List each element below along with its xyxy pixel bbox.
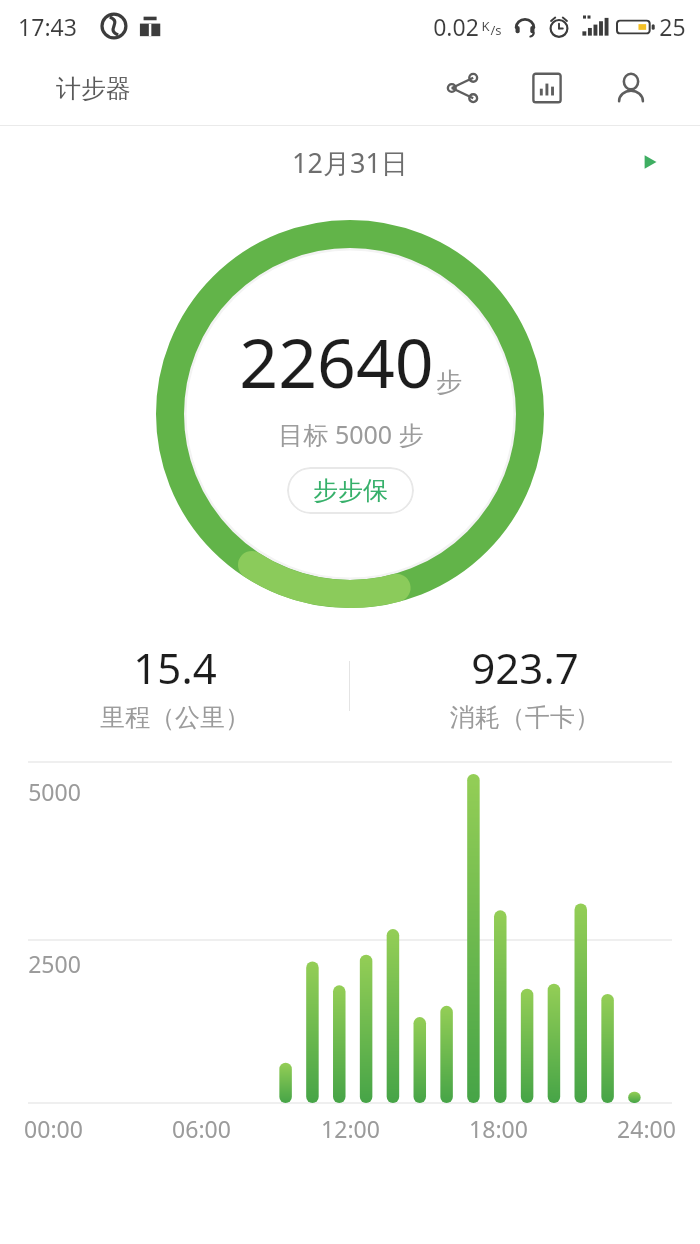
staticText: 里程（公里） bbox=[100, 702, 250, 733]
staticText: 消耗（千卡） bbox=[450, 702, 600, 733]
staticText: 步 bbox=[436, 366, 462, 399]
staticText: 00:00 bbox=[24, 1113, 83, 1144]
staticText: 25 bbox=[659, 11, 686, 42]
staticText: 目标 5000 步 bbox=[278, 417, 424, 451]
staticText: 06:00 bbox=[172, 1113, 231, 1144]
staticText: 22640 bbox=[239, 315, 434, 408]
staticText: 15.4 bbox=[133, 639, 217, 696]
staticText: /s bbox=[490, 21, 502, 39]
button[interactable]: Share bbox=[434, 59, 492, 117]
button[interactable]: Next day bbox=[632, 144, 668, 180]
staticText: 12:00 bbox=[321, 1113, 380, 1144]
staticText: 12月31日 bbox=[292, 144, 408, 181]
button[interactable]: 15.4 bbox=[0, 639, 349, 733]
staticText: 计步器 bbox=[56, 73, 131, 104]
button[interactable]: Profile bbox=[602, 59, 660, 117]
staticText: 24:00 bbox=[617, 1113, 676, 1144]
staticText: 17:43 bbox=[18, 11, 77, 42]
button[interactable]: 步步保 bbox=[287, 467, 414, 514]
staticText: 0.02 bbox=[433, 11, 479, 42]
staticText: 2500 bbox=[28, 948, 81, 979]
staticText: K bbox=[481, 17, 490, 35]
staticText: 5000 bbox=[28, 776, 81, 807]
button[interactable]: 923.7 bbox=[350, 639, 700, 733]
staticText: 923.7 bbox=[471, 639, 579, 696]
staticText: 步步保 bbox=[313, 475, 388, 506]
button[interactable]: Statistics bbox=[518, 59, 576, 117]
staticText: 18:00 bbox=[469, 1113, 528, 1144]
